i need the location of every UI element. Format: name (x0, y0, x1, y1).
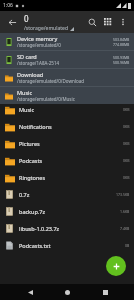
button[interactable]: Search (84, 14, 100, 30)
staticText: 0 (24, 13, 29, 24)
staticText: 0KB (123, 107, 130, 112)
staticText: 0KB (123, 175, 130, 180)
button[interactable]: Recent apps (97, 284, 113, 300)
button[interactable]: libusb-1.0.23.7z (0, 220, 134, 237)
button[interactable]: Back (22, 284, 38, 300)
button[interactable]: Grid view (100, 14, 116, 30)
button[interactable]: Podcasts (0, 152, 134, 169)
staticText: /storage/emulated (24, 25, 68, 32)
staticText: 1:06 (3, 2, 13, 9)
staticText: Podcasts.txt (19, 242, 125, 249)
button[interactable]: Device memory (0, 33, 134, 50)
button[interactable]: Pictures (0, 135, 134, 152)
button[interactable]: 0.7z (0, 186, 134, 203)
button[interactable]: Podcasts.txt (0, 237, 134, 254)
button[interactable]: backup.7z (0, 203, 134, 220)
staticText: Music (17, 89, 33, 96)
button[interactable]: Download (0, 69, 134, 86)
staticText: 0KB (123, 124, 130, 129)
button[interactable]: SD card (0, 51, 134, 68)
button[interactable]: Ringtones (0, 169, 134, 186)
staticText: 0B (125, 243, 130, 248)
staticText: Ringtones (19, 174, 123, 181)
staticText: Device memory (17, 35, 58, 42)
staticText: 0KB (123, 158, 130, 163)
staticText: /storage/emulated/0/Music (17, 96, 75, 102)
staticText: /storage/emulated/0/Download (17, 78, 84, 84)
staticText: 503.84MB (113, 37, 130, 42)
button[interactable]: Notifications (0, 118, 134, 135)
staticText: 774.88MB (113, 42, 130, 47)
staticText: backup.7z (19, 208, 120, 215)
staticText: 0.7z (19, 191, 116, 198)
staticText: libusb-1.0.23.7z (19, 225, 120, 232)
button[interactable]: 0 (24, 13, 84, 32)
button[interactable]: Navigate up (4, 14, 20, 30)
staticText: 7.4KB (120, 226, 130, 231)
staticText: Notifications (19, 123, 123, 130)
staticText: 1.6KB (120, 209, 130, 214)
staticText: SD card (17, 53, 37, 60)
staticText: 173.5KB (116, 192, 130, 197)
staticText: 500.96MB (113, 60, 130, 65)
button[interactable]: Home (59, 284, 75, 300)
button[interactable]: Music (0, 101, 134, 118)
staticText: 500.93MB (113, 55, 130, 60)
staticText: Podcasts (19, 157, 123, 164)
staticText: /storage/1A8A-2514 (17, 60, 60, 66)
staticText: Pictures (19, 140, 123, 147)
staticText: Download (17, 71, 44, 78)
button[interactable]: More options (116, 15, 130, 29)
staticText: /storage/emulated/0 (17, 42, 61, 48)
staticText: 0KB (123, 141, 130, 146)
staticText: Music (19, 106, 123, 113)
button[interactable]: Music (0, 87, 134, 104)
button[interactable]: Add (106, 256, 126, 276)
